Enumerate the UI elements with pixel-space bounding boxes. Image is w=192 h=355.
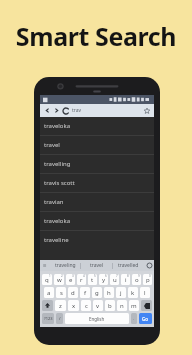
staticText: e — [69, 276, 73, 284]
staticText: traveling — [55, 262, 76, 269]
button[interactable]: Clipboard — [40, 260, 50, 271]
staticText: t — [91, 276, 94, 284]
button[interactable]: Back — [43, 106, 52, 115]
button[interactable]: More options — [144, 260, 154, 271]
staticText: ?123 — [44, 316, 53, 321]
button[interactable]: traveling — [50, 260, 80, 271]
button[interactable]: g — [92, 287, 102, 298]
button[interactable]: ?123 — [42, 313, 54, 324]
staticText: h — [107, 289, 111, 297]
staticText: i — [125, 276, 127, 284]
button[interactable]: travel — [81, 260, 112, 271]
button[interactable]: Forward — [52, 106, 61, 115]
button[interactable]: j — [116, 287, 126, 298]
button[interactable]: k — [128, 287, 138, 298]
staticText: travel — [44, 141, 60, 149]
button[interactable]: q — [42, 274, 52, 285]
staticText: travis scott — [44, 179, 75, 187]
button[interactable]: f — [80, 287, 90, 298]
staticText: u — [113, 276, 117, 284]
button[interactable]: a — [44, 287, 54, 298]
button[interactable]: . — [131, 313, 137, 324]
staticText: n — [120, 302, 124, 310]
button[interactable]: l — [140, 287, 150, 298]
staticText: 9 — [138, 274, 140, 278]
staticText: travel — [90, 262, 104, 269]
button[interactable]: u — [110, 274, 119, 285]
staticText: g — [95, 289, 99, 297]
staticText: 5 — [94, 274, 96, 278]
staticText: 4 — [83, 274, 85, 278]
staticText: Smart Search — [0, 19, 192, 53]
staticText: x — [72, 302, 76, 310]
button[interactable]: travian — [40, 193, 154, 211]
button[interactable]: p — [143, 274, 152, 285]
staticText: traveloka — [44, 217, 71, 225]
staticText: 3 — [72, 274, 74, 278]
staticText: 8 — [127, 274, 129, 278]
button[interactable]: d — [68, 287, 78, 298]
staticText: 2 — [61, 274, 63, 278]
button[interactable]: b — [105, 300, 115, 311]
button[interactable]: e — [66, 274, 75, 285]
staticText: Go — [142, 316, 149, 322]
staticText: 1 — [49, 274, 51, 278]
button[interactable]: Go — [139, 313, 152, 324]
staticText: travelled — [118, 262, 139, 269]
button[interactable]: English — [65, 313, 129, 324]
staticText: q — [45, 276, 49, 284]
button[interactable]: Shift — [42, 300, 53, 311]
staticText: traveline — [44, 236, 69, 244]
staticText: ☰ — [43, 263, 47, 268]
button[interactable]: traveloka — [40, 117, 154, 135]
staticText: l — [144, 289, 146, 297]
staticText: p — [146, 276, 150, 284]
staticText: o — [135, 276, 139, 284]
staticText: w — [57, 276, 62, 284]
button[interactable]: traveline — [40, 231, 154, 249]
button[interactable]: z — [55, 300, 66, 311]
button[interactable]: h — [104, 287, 114, 298]
button[interactable]: n — [117, 300, 127, 311]
button[interactable]: c — [81, 300, 91, 311]
staticText: travian — [44, 198, 64, 206]
staticText: d — [71, 289, 75, 297]
button[interactable]: traveloka — [40, 212, 154, 230]
staticText: m — [131, 302, 137, 310]
button[interactable]: Backspace — [141, 300, 152, 311]
button[interactable]: t — [88, 274, 97, 285]
staticText: y — [102, 276, 106, 284]
button[interactable]: y — [99, 274, 108, 285]
button[interactable]: Reload — [61, 106, 70, 115]
staticText: r — [80, 276, 83, 284]
staticText: traveloka — [44, 122, 71, 130]
button[interactable]: travelled — [113, 260, 144, 271]
button[interactable]: s — [56, 287, 66, 298]
button[interactable]: m — [129, 300, 139, 311]
button[interactable]: travel — [40, 136, 154, 154]
staticText: . — [133, 316, 135, 321]
staticText: k — [131, 289, 135, 297]
button[interactable]: travis scott — [40, 174, 154, 192]
staticText: c — [85, 302, 88, 310]
staticText: 0 — [149, 274, 151, 278]
staticText: 6 — [105, 274, 107, 278]
staticText: f — [84, 289, 87, 297]
button[interactable]: travelling — [40, 155, 154, 173]
staticText: / — [59, 316, 61, 321]
button[interactable]: o — [132, 274, 141, 285]
staticText: English — [89, 316, 105, 322]
staticText: travelling — [44, 160, 71, 168]
button[interactable]: / — [56, 313, 63, 324]
staticText: a — [47, 289, 51, 297]
button[interactable]: Bookmark — [142, 106, 151, 115]
button[interactable]: i — [121, 274, 130, 285]
staticText: b — [108, 302, 112, 310]
staticText: trav — [72, 107, 142, 114]
button[interactable]: w — [54, 274, 64, 285]
button[interactable]: x — [68, 300, 79, 311]
staticText: s — [60, 289, 63, 297]
staticText: 7 — [116, 274, 118, 278]
button[interactable]: r — [77, 274, 86, 285]
button[interactable]: v — [93, 300, 103, 311]
